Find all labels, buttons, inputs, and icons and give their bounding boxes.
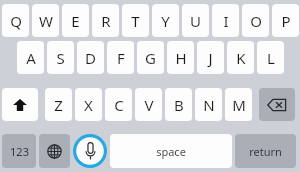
button[interactable]: O: [242, 4, 269, 37]
staticText: D: [85, 48, 96, 68]
staticText: J: [208, 48, 213, 68]
staticText: O: [250, 11, 262, 31]
button[interactable]: H: [167, 41, 194, 74]
button[interactable]: U: [182, 4, 209, 37]
button[interactable]: I: [212, 4, 239, 37]
staticText: N: [203, 95, 215, 115]
staticText: M: [232, 95, 246, 115]
staticText: L: [267, 48, 275, 68]
button[interactable]: 123: [2, 134, 36, 168]
button[interactable]: C: [105, 88, 132, 121]
button[interactable]: L: [257, 41, 284, 74]
staticText: C: [114, 95, 124, 115]
staticText: F: [117, 48, 125, 68]
button[interactable]: K: [227, 41, 254, 74]
button[interactable]: space: [110, 134, 232, 168]
staticText: R: [101, 11, 111, 31]
staticText: W: [39, 11, 53, 31]
button[interactable]: Q: [2, 4, 29, 37]
staticText: G: [145, 48, 156, 68]
button[interactable]: M: [225, 88, 252, 121]
button[interactable]: G: [137, 41, 164, 74]
button[interactable]: Switch keyboard language: [39, 134, 70, 168]
button[interactable]: A: [17, 41, 44, 74]
button[interactable]: J: [197, 41, 224, 74]
button[interactable]: B: [165, 88, 192, 121]
staticText: Q: [10, 11, 22, 31]
button[interactable]: Z: [45, 88, 72, 121]
staticText: B: [174, 95, 184, 115]
staticText: space: [156, 144, 186, 159]
button[interactable]: Dictate: [73, 134, 107, 168]
button[interactable]: W: [32, 4, 59, 37]
button[interactable]: P: [272, 4, 299, 37]
button[interactable]: return: [235, 134, 296, 168]
staticText: Z: [54, 95, 63, 115]
staticText: T: [131, 11, 140, 31]
staticText: 123: [10, 144, 29, 159]
button[interactable]: Shift: [2, 88, 38, 121]
button[interactable]: S: [47, 41, 74, 74]
staticText: V: [144, 95, 154, 115]
staticText: U: [190, 11, 201, 31]
staticText: A: [26, 48, 36, 68]
button[interactable]: V: [135, 88, 162, 121]
staticText: E: [71, 11, 80, 31]
staticText: P: [281, 11, 291, 31]
button[interactable]: T: [122, 4, 149, 37]
button[interactable]: Backspace: [259, 88, 295, 121]
button[interactable]: F: [107, 41, 134, 74]
button[interactable]: X: [75, 88, 102, 121]
staticText: H: [175, 48, 187, 68]
staticText: Y: [161, 11, 170, 31]
staticText: K: [236, 48, 246, 68]
staticText: X: [84, 95, 93, 115]
staticText: return: [249, 144, 282, 159]
staticText: S: [56, 48, 65, 68]
button[interactable]: D: [77, 41, 104, 74]
button[interactable]: N: [195, 88, 222, 121]
button[interactable]: E: [62, 4, 89, 37]
button[interactable]: Y: [152, 4, 179, 37]
staticText: I: [223, 11, 229, 31]
button[interactable]: R: [92, 4, 119, 37]
